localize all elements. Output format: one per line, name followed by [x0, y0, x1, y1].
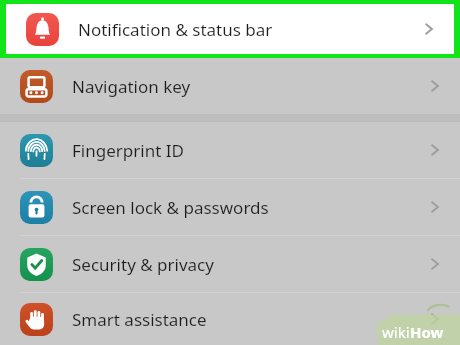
button[interactable]: Fingerprint ID [0, 122, 460, 178]
staticText: Smart assistance [72, 308, 207, 331]
button[interactable]: Security & privacy [0, 236, 460, 292]
button[interactable]: Smart assistance [0, 293, 460, 345]
staticText: Navigation key [72, 75, 191, 98]
staticText: wiki [382, 322, 410, 342]
staticText: Notification & status bar [78, 18, 273, 41]
button[interactable]: Screen lock & passwords [0, 179, 460, 235]
staticText: How [410, 322, 444, 342]
button[interactable]: Notification & status bar [6, 4, 454, 54]
button[interactable]: Navigation key [0, 58, 460, 114]
staticText: Security & privacy [72, 253, 214, 276]
staticText: Fingerprint ID [72, 139, 184, 162]
staticText: Screen lock & passwords [72, 196, 269, 219]
